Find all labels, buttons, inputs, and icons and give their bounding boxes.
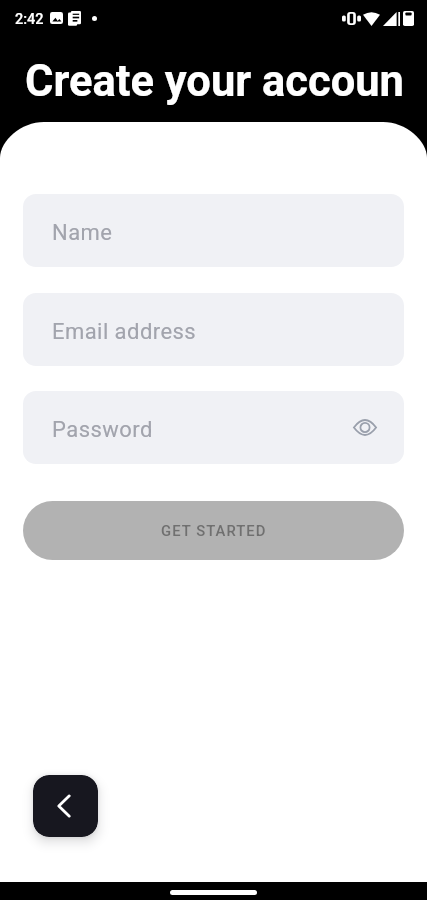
staticText: 2:42: [15, 11, 44, 28]
staticText: Name: [52, 220, 113, 246]
staticText: Email address: [52, 319, 197, 345]
button[interactable]: Name: [23, 194, 404, 267]
button[interactable]: Show password: [350, 412, 380, 442]
button[interactable]: Email address: [23, 293, 404, 366]
button[interactable]: Back: [33, 775, 98, 837]
button[interactable]: GET STARTED: [23, 501, 404, 560]
button[interactable]: Password: [23, 391, 404, 464]
staticText: GET STARTED: [161, 522, 267, 539]
staticText: Password: [52, 417, 153, 443]
staticText: Create your account: [25, 56, 404, 107]
